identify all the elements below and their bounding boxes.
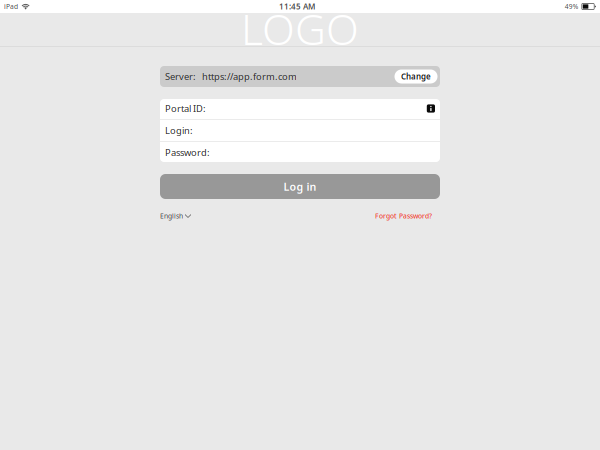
- staticText: Login:: [165, 124, 193, 137]
- staticText: Password:: [165, 146, 210, 159]
- button[interactable]: About Portal ID: [425, 102, 437, 115]
- staticText: Portal ID:: [165, 102, 206, 115]
- staticText: 11:45 AM: [279, 1, 315, 12]
- staticText: LOGO: [241, 0, 359, 57]
- button[interactable]: Password:: [160, 142, 440, 163]
- staticText: Forgot Password?: [375, 212, 432, 220]
- staticText: Change: [401, 71, 431, 82]
- staticText: https://app.form.com: [202, 70, 297, 83]
- button[interactable]: Change: [394, 69, 437, 83]
- staticText: iPad: [4, 2, 18, 11]
- staticText: English: [160, 212, 183, 220]
- button[interactable]: Forgot Password?: [375, 210, 432, 222]
- button[interactable]: Log in: [160, 174, 440, 199]
- staticText: Server:: [165, 70, 196, 83]
- button[interactable]: English: [160, 210, 191, 222]
- staticText: 49%: [565, 2, 579, 11]
- staticText: Log in: [283, 179, 316, 194]
- button[interactable]: Login:: [160, 120, 440, 141]
- button[interactable]: Portal ID:: [160, 98, 440, 119]
